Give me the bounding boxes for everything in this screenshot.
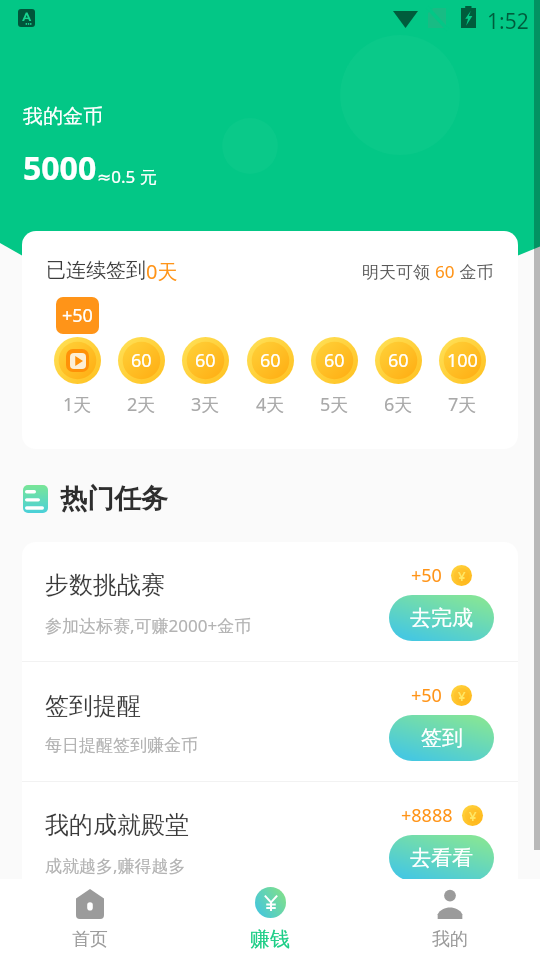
button[interactable]: 60 [375,337,422,417]
staticText: 60 [195,348,216,373]
staticText: 赚钱 [250,927,290,952]
staticText: 金币 [455,260,494,283]
button[interactable]: 赚钱 [180,887,360,952]
other: App icon [18,9,35,27]
staticText: 我的金币 [23,104,103,129]
staticText: 60 [435,260,455,283]
button[interactable]: 我的成就殿堂 [22,782,518,901]
staticText: 3天 [191,392,220,417]
staticText: 2天 [127,392,156,417]
staticText: +50 [411,563,442,588]
staticText: 0天 [146,258,178,285]
staticText: 参加达标赛,可赚2000+金币 [45,614,252,637]
staticText: ¥ [458,687,466,705]
button[interactable]: 60 [118,337,165,417]
staticText: ¥ [469,807,477,825]
staticText: 60 [131,348,152,373]
staticText: 我的 [432,928,468,951]
staticText: 7天 [448,392,477,417]
staticText: 首页 [72,928,108,951]
button[interactable]: 100 [439,337,486,417]
button[interactable]: 我的 [360,889,540,951]
staticText: 热门任务 [60,482,168,516]
button[interactable]: 签到提醒 [22,662,518,781]
staticText: 5天 [320,392,349,417]
staticText: 已连续签到 [46,258,146,283]
staticText: 去完成 [410,605,473,631]
staticText: 60 [324,348,345,373]
staticText: ¥ [458,567,466,585]
staticText: 6天 [384,392,413,417]
staticText: 明天可领 [362,260,435,283]
staticText: 去看看 [410,845,473,871]
button[interactable]: 去看看 [389,835,494,881]
button[interactable]: 首页 [0,889,180,951]
staticText: 1天 [63,392,92,417]
staticText: ≈0.5 元 [97,165,157,188]
staticText: +8888 [401,803,453,828]
staticText: 60 [388,348,409,373]
staticText: 每日提醒签到赚金币 [45,735,198,756]
button[interactable]: 1天 [54,337,101,417]
button[interactable]: 60 [182,337,229,417]
staticText: 成就越多,赚得越多 [45,854,186,877]
staticText: +50 [62,303,93,328]
staticText: 签到提醒 [45,691,141,721]
button[interactable]: 60 [311,337,358,417]
button[interactable]: +50 [56,297,99,334]
staticText: +50 [411,683,442,708]
button[interactable]: 60 [247,337,294,417]
button[interactable]: 步数挑战赛 [22,542,518,661]
staticText: 5000 [23,146,97,190]
staticText: 4天 [256,392,285,417]
staticText: 步数挑战赛 [45,570,165,600]
staticText: 60 [260,348,281,373]
button[interactable]: 签到 [389,715,494,761]
button[interactable]: 去完成 [389,595,494,641]
staticText: 我的成就殿堂 [45,810,189,840]
staticText: 100 [447,348,478,373]
staticText: 签到 [421,725,463,751]
staticText: 1:52 [487,7,529,36]
